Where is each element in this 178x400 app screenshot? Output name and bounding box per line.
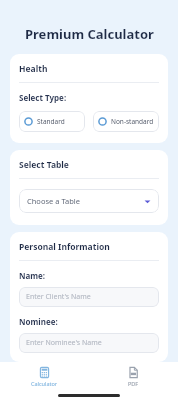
button[interactable]: Enter Nominee's Name <box>19 333 159 353</box>
button[interactable]: Non-standard <box>93 111 159 132</box>
staticText: Choose a Table <box>27 196 80 206</box>
button[interactable]: Choose a Table <box>19 189 159 213</box>
staticText: Health <box>19 63 48 75</box>
staticText: PDF <box>128 380 139 387</box>
staticText: Select Type: <box>19 92 67 103</box>
staticText: Personal Information <box>19 241 110 253</box>
staticText: Calculator <box>31 380 58 387</box>
staticText: Standard <box>37 117 65 126</box>
staticText: Nominee: <box>19 316 58 327</box>
button[interactable]: Calculator <box>0 362 89 391</box>
staticText: Enter Client's Name <box>26 292 91 302</box>
staticText: Name: <box>19 270 46 281</box>
staticText: Non-standard <box>111 117 154 126</box>
staticText: Select Table <box>19 159 69 171</box>
staticText: Premium Calculator <box>25 25 154 43</box>
button[interactable]: Enter Client's Name <box>19 287 159 307</box>
staticText: Enter Nominee's Name <box>26 338 102 348</box>
other: PDF document <box>128 367 139 378</box>
button[interactable]: PDF document <box>89 362 178 391</box>
button[interactable]: Standard <box>19 111 85 132</box>
other: Calculator <box>39 367 50 378</box>
